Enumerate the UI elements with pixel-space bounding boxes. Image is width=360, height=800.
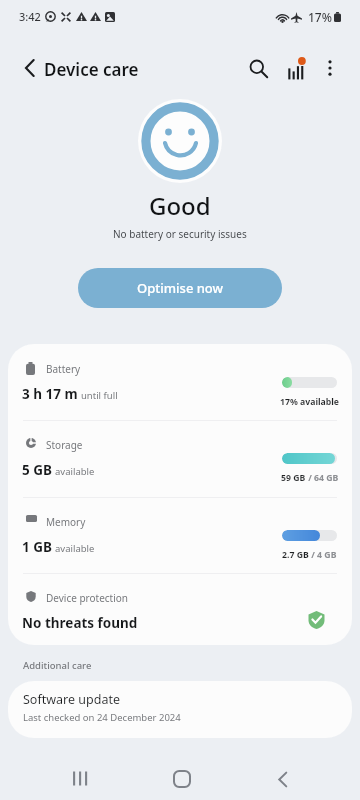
staticText: Software update — [23, 691, 120, 708]
staticText: Battery — [46, 362, 81, 376]
button[interactable]: Memory — [8, 497, 352, 573]
staticText: Storage — [46, 438, 83, 452]
staticText: 3 h 17 m — [22, 385, 78, 403]
button[interactable]: Optimise now — [78, 268, 282, 308]
staticText: No threats found — [22, 614, 138, 632]
staticText: / 64 GB — [306, 472, 339, 484]
staticText: Optimise now — [137, 279, 224, 297]
staticText: until full — [81, 389, 118, 402]
staticText: available — [55, 542, 95, 555]
staticText: Last checked on 24 December 2024 — [23, 711, 181, 724]
staticText: 17% available — [280, 396, 340, 408]
button[interactable]: Device protection — [8, 573, 352, 645]
staticText: Device care — [44, 58, 139, 81]
button[interactable]: Usage statistics — [277, 49, 315, 87]
button[interactable]: Battery — [8, 344, 352, 420]
staticText: 5 GB — [22, 461, 52, 479]
button[interactable]: Software update — [8, 681, 352, 738]
button[interactable]: Recent apps — [58, 756, 102, 800]
staticText: No battery or security issues — [113, 227, 247, 241]
button[interactable]: Search — [239, 49, 277, 87]
button[interactable]: More options — [311, 49, 349, 87]
button[interactable]: Back — [260, 757, 304, 800]
staticText: 59 GB — [281, 472, 306, 484]
staticText: available — [55, 465, 95, 478]
staticText: / 4 GB — [309, 549, 337, 561]
button[interactable]: Home — [160, 757, 204, 800]
button[interactable]: Storage — [8, 420, 352, 497]
staticText: 17% — [308, 9, 332, 25]
staticText: 2.7 GB — [282, 549, 309, 561]
staticText: Device protection — [46, 591, 129, 605]
staticText: Good — [149, 189, 211, 222]
staticText: Memory — [46, 515, 86, 529]
staticText: Additional care — [23, 659, 92, 672]
button[interactable]: Navigate up — [11, 50, 47, 86]
staticText: 1 GB — [22, 538, 52, 556]
staticText: 3:42 — [19, 9, 41, 24]
